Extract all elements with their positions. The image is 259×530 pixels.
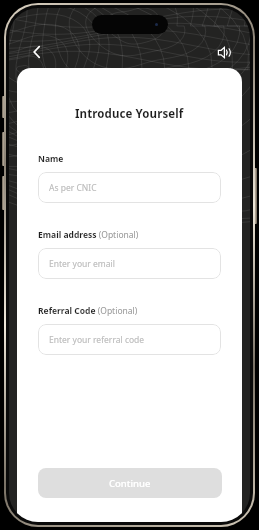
staticText: As per CNIC — [49, 182, 97, 194]
staticText: Enter your email — [49, 258, 115, 270]
button[interactable]: Sound — [209, 38, 237, 66]
staticText: Enter your referral code — [49, 334, 145, 346]
staticText: Introduce Yourself — [75, 106, 184, 122]
staticText: Name — [38, 153, 64, 165]
button[interactable]: As per CNIC — [38, 172, 221, 203]
button[interactable]: Back — [23, 38, 51, 66]
button[interactable]: Continue — [38, 468, 222, 498]
staticText: Continue — [109, 477, 151, 490]
staticText: Email address (Optional) — [38, 229, 139, 241]
button[interactable]: Enter your referral code — [38, 324, 221, 355]
staticText: Referral Code (Optional) — [38, 305, 138, 317]
button[interactable]: Enter your email — [38, 248, 221, 279]
